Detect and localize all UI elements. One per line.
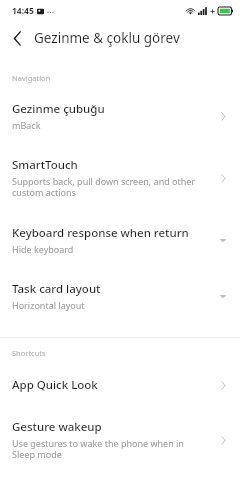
button[interactable]: Task card layout: [0, 268, 240, 324]
staticText: Horizontal layout: [12, 299, 85, 311]
staticText: Gesture wakeup: [12, 419, 102, 435]
button[interactable]: App Quick Look: [0, 363, 240, 407]
button[interactable]: Back: [4, 25, 30, 51]
button[interactable]: Gesture wakeup: [0, 407, 240, 473]
staticText: Gezinme çubuğu: [12, 101, 105, 117]
staticText: Gezinme & çoklu görev: [34, 29, 180, 47]
staticText: mBack: [12, 119, 41, 131]
staticText: Supports back, pull down screen, and oth…: [12, 175, 206, 199]
staticText: App Quick Look: [12, 377, 98, 393]
button[interactable]: SmartTouch: [0, 144, 240, 212]
button[interactable]: Keyboard response when return: [0, 212, 240, 268]
staticText: Task card layout: [12, 281, 101, 297]
staticText: Use gestures to wake the phone when in S…: [12, 437, 206, 461]
button[interactable]: Gezinme çubuğu: [0, 88, 240, 144]
staticText: SmartTouch: [12, 157, 78, 173]
staticText: 14:45: [12, 5, 34, 17]
staticText: Navigation: [12, 73, 51, 83]
staticText: Keyboard response when return: [12, 225, 189, 241]
staticText: Hide keyboard: [12, 243, 74, 255]
staticText: Shortcuts: [12, 348, 46, 358]
